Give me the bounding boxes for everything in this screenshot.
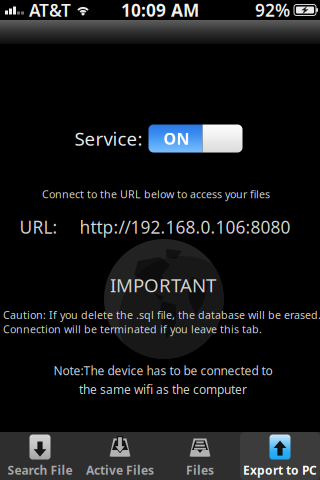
staticText: http://192.168.0.106:8080	[79, 215, 290, 238]
staticText: Active Files	[86, 462, 154, 478]
button[interactable]: Active Files	[80, 432, 160, 480]
staticText: ON	[163, 128, 189, 149]
staticText: AT&T	[29, 0, 71, 21]
staticText: Files	[186, 462, 214, 478]
staticText: Search File	[7, 462, 72, 478]
staticText: Export to PC	[243, 462, 317, 478]
staticText: 10:09 AM	[121, 0, 199, 21]
staticText: Note:The device has to be connected to	[53, 363, 272, 378]
staticText: Caution: If you delete the .sql file, th…	[3, 308, 320, 322]
button[interactable]: Export to PC	[240, 432, 320, 480]
staticText: 92%	[255, 0, 290, 21]
button[interactable]: Search File	[0, 432, 80, 480]
staticText: Service:	[74, 126, 142, 151]
staticText: IMPORTANT	[110, 273, 216, 297]
staticText: the same wifi as the computer	[79, 381, 247, 397]
button[interactable]: ON	[148, 124, 242, 152]
staticText: URL:	[19, 215, 57, 238]
staticText: Connection will be terminated if you lea…	[3, 322, 262, 336]
staticText: Connect to the URL below to access your …	[42, 187, 270, 201]
button[interactable]: Files	[160, 432, 240, 480]
